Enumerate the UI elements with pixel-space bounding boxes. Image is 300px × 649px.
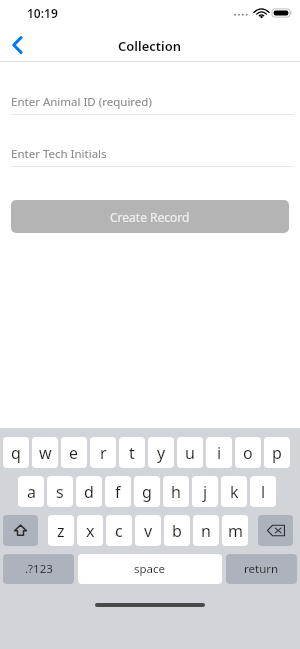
button[interactable]: d	[76, 476, 102, 507]
button[interactable]: i	[206, 437, 232, 468]
button[interactable]: b	[164, 515, 190, 546]
staticText: l	[261, 481, 266, 503]
staticText: g	[142, 481, 152, 503]
button[interactable]: n	[193, 515, 219, 546]
button[interactable]: .?123	[3, 554, 74, 584]
button[interactable]: z	[48, 515, 74, 546]
button[interactable]: h	[163, 476, 189, 507]
button[interactable]: s	[47, 476, 73, 507]
button[interactable]: l	[250, 476, 276, 507]
staticText: t	[129, 442, 135, 464]
staticText: Enter Tech Initials	[11, 146, 107, 162]
staticText: s	[56, 481, 64, 503]
staticText: c	[115, 520, 123, 542]
button[interactable]: Backspace	[258, 515, 293, 546]
staticText: z	[57, 520, 65, 542]
button[interactable]: return	[226, 554, 297, 584]
staticText: .?123	[25, 561, 53, 577]
button[interactable]: m	[222, 515, 248, 546]
staticText: x	[86, 520, 95, 542]
staticText: b	[172, 520, 182, 542]
button[interactable]: r	[90, 437, 116, 468]
button[interactable]: Back	[0, 28, 34, 62]
button[interactable]: Enter Animal ID (required)	[0, 94, 300, 115]
staticText: k	[230, 481, 239, 503]
button[interactable]: Shift	[3, 515, 38, 546]
staticText: space	[134, 561, 166, 577]
button[interactable]: y	[148, 437, 174, 468]
button[interactable]: Create Record	[11, 200, 289, 233]
button[interactable]: a	[18, 476, 44, 507]
staticText: m	[228, 520, 243, 542]
button[interactable]: j	[192, 476, 218, 507]
button[interactable]: q	[3, 437, 29, 468]
staticText: u	[185, 442, 195, 464]
button[interactable]: f	[105, 476, 131, 507]
staticText: r	[100, 442, 107, 464]
button[interactable]: w	[32, 437, 58, 468]
button[interactable]: o	[235, 437, 261, 468]
staticText: h	[171, 481, 181, 503]
button[interactable]: e	[61, 437, 87, 468]
button[interactable]: t	[119, 437, 145, 468]
staticText: Enter Animal ID (required)	[11, 94, 152, 110]
button[interactable]: c	[106, 515, 132, 546]
staticText: i	[217, 442, 222, 464]
staticText: a	[27, 481, 36, 503]
button[interactable]: p	[264, 437, 290, 468]
button[interactable]: Enter Tech Initials	[0, 146, 300, 167]
button[interactable]: space	[78, 554, 222, 584]
staticText: Create Record	[110, 209, 190, 225]
button[interactable]: x	[77, 515, 103, 546]
staticText: o	[243, 442, 253, 464]
staticText: v	[144, 520, 153, 542]
staticText: q	[11, 442, 21, 464]
staticText: f	[115, 481, 121, 503]
staticText: return	[244, 561, 279, 577]
button[interactable]: u	[177, 437, 203, 468]
button[interactable]: k	[221, 476, 247, 507]
button[interactable]: g	[134, 476, 160, 507]
staticText: d	[84, 481, 94, 503]
button[interactable]: v	[135, 515, 161, 546]
staticText: w	[39, 442, 52, 464]
staticText: y	[157, 442, 166, 464]
staticText: 10:19	[27, 5, 58, 21]
staticText: Collection	[118, 37, 182, 55]
staticText: e	[69, 442, 79, 464]
staticText: j	[203, 481, 208, 503]
staticText: p	[272, 442, 282, 464]
staticText: n	[201, 520, 211, 542]
